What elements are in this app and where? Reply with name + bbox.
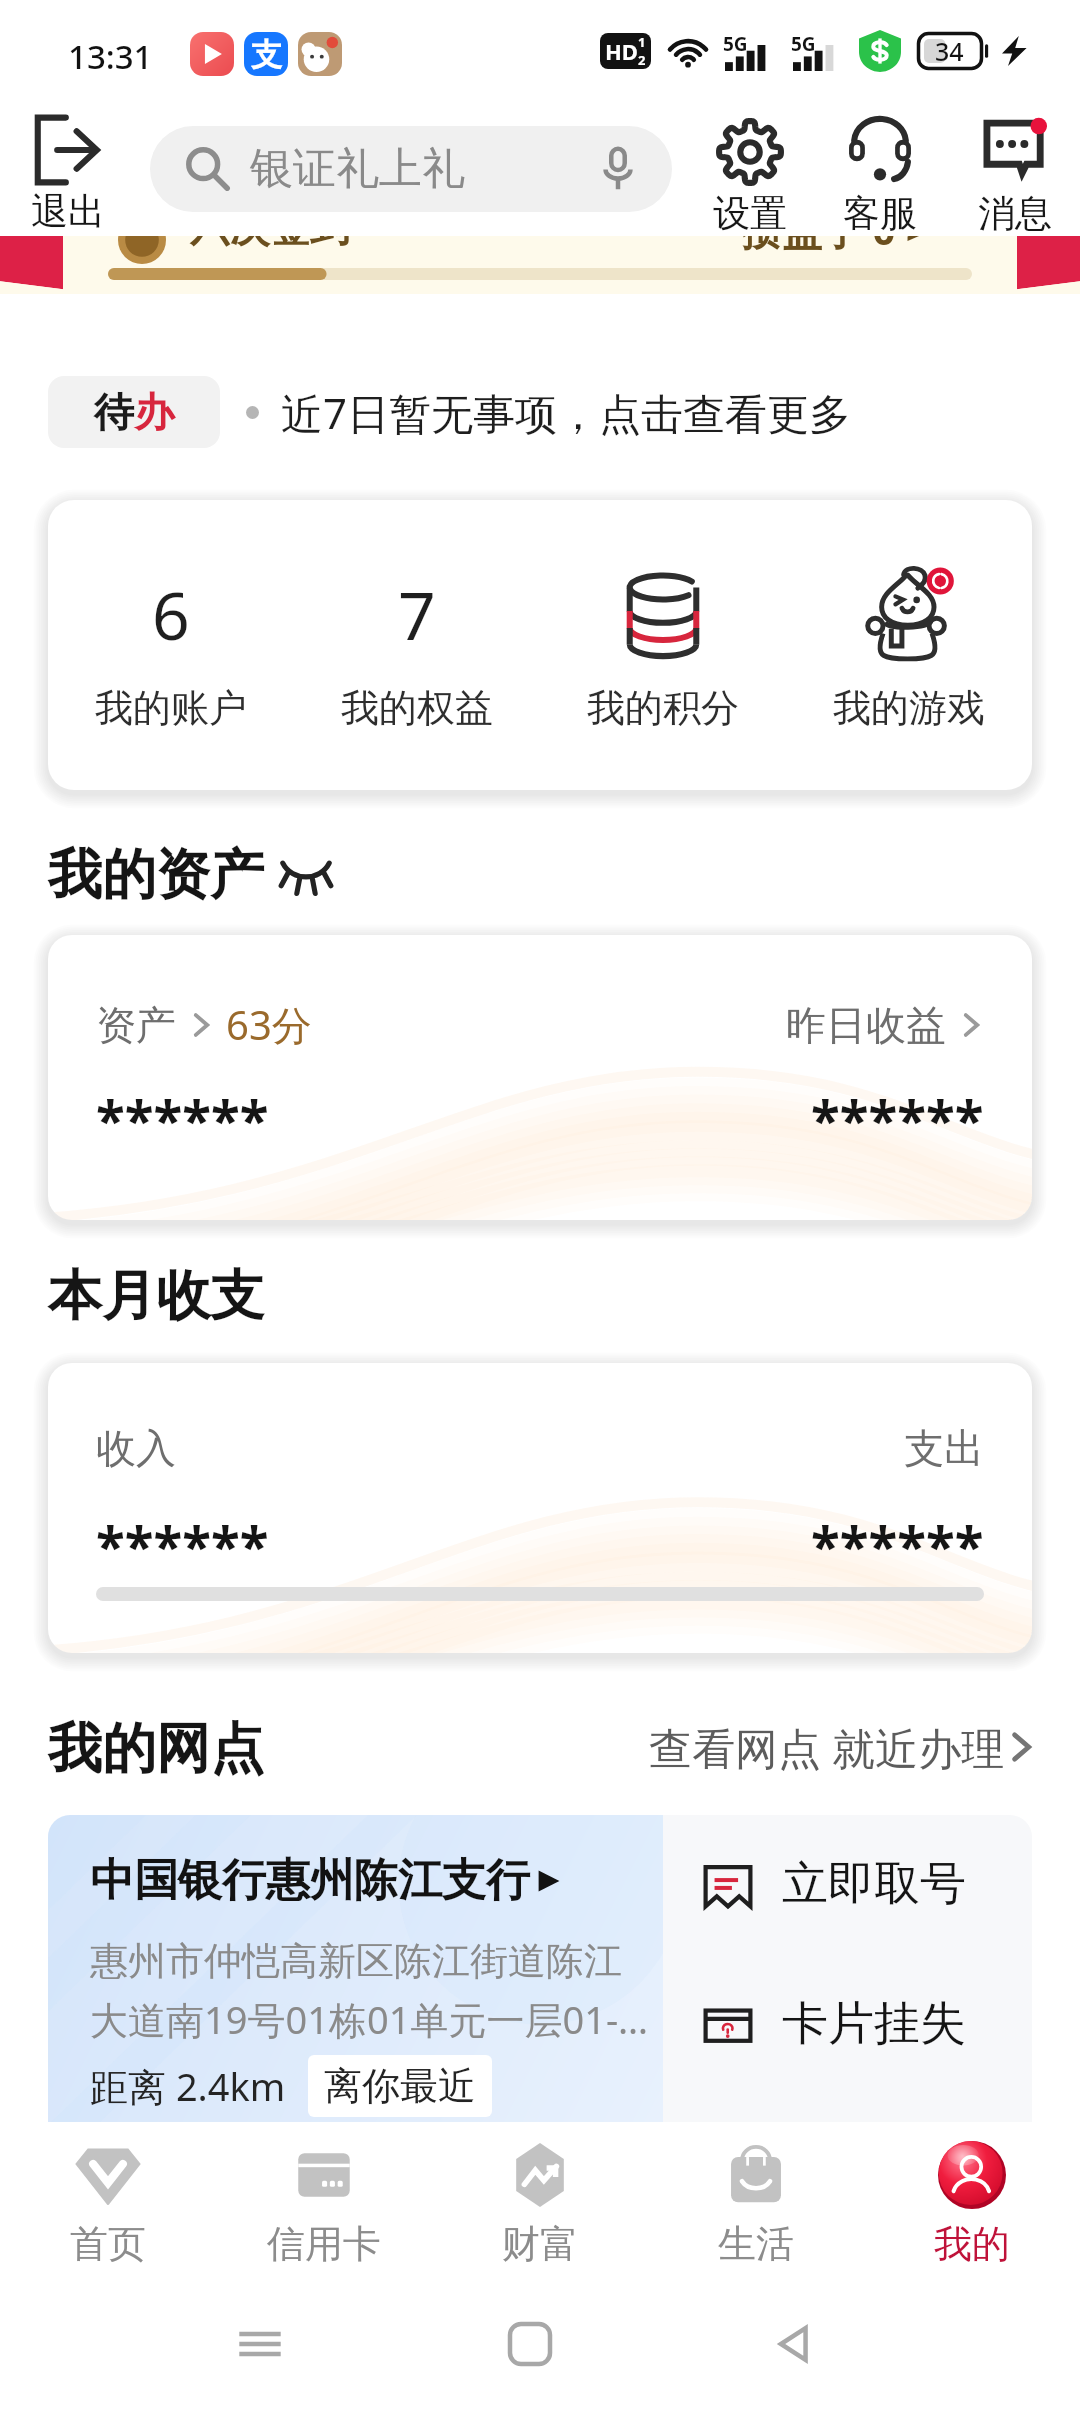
staticText: 大道南19号01栋01单元一层01-…	[90, 1993, 649, 2045]
button[interactable]: 我的游戏	[786, 550, 1032, 740]
button[interactable]: 信用卡	[216, 2122, 432, 2268]
staticText: 银证礼上礼	[250, 142, 465, 196]
staticText: 34	[935, 34, 964, 68]
button[interactable]: 7	[294, 550, 540, 740]
staticText: 生活	[718, 2220, 794, 2268]
staticText: 5G	[791, 31, 816, 57]
staticText: 6	[152, 569, 190, 659]
staticText: 中国银行惠州陈江支行	[90, 1853, 530, 1908]
button[interactable]: 查看网点 就近办理	[649, 1714, 1037, 1780]
button[interactable]: 消息	[953, 114, 1077, 239]
staticText: ******	[96, 1509, 269, 1581]
staticText: ******	[96, 1083, 269, 1155]
staticText: 距离 2.4km	[90, 2060, 286, 2112]
staticText: 待	[94, 387, 134, 437]
staticText: 我的网点	[48, 1715, 264, 1783]
button[interactable]: Home	[488, 2302, 572, 2386]
staticText: 财富	[502, 2220, 578, 2268]
staticText: 我的账户	[95, 684, 247, 732]
staticText: 立即取号	[782, 1855, 966, 1913]
button[interactable]: 立即取号	[700, 1846, 1010, 1922]
staticText: 本月收支	[48, 1262, 264, 1330]
button[interactable]: 设置	[688, 114, 812, 239]
button[interactable]: 卡片挂失	[700, 1986, 1010, 2062]
staticText: 支出	[904, 1423, 984, 1473]
staticText: 63分	[226, 997, 312, 1052]
staticText: 惠州市仲恺高新区陈江街道陈江	[90, 1937, 622, 1985]
staticText: 13:31	[68, 34, 153, 79]
staticText: 2	[638, 51, 646, 69]
button[interactable]: 客服	[818, 114, 942, 239]
button[interactable]: 六次签到	[0, 236, 1080, 294]
staticText: 近7日暂无事项，点击查看更多	[281, 384, 852, 441]
button[interactable]: 6	[48, 550, 294, 740]
staticText: ******	[811, 1509, 984, 1581]
staticText: 消息	[978, 190, 1052, 237]
button[interactable]: Recent apps	[218, 2302, 302, 2386]
button[interactable]: 我的	[864, 2122, 1080, 2268]
staticText: 我的游戏	[833, 684, 985, 732]
staticText: 设置	[713, 190, 787, 237]
button[interactable]: 我的积分	[540, 550, 786, 740]
staticText: ******	[811, 1083, 984, 1155]
staticText: 5G	[723, 31, 748, 57]
button[interactable]: Back	[753, 2302, 837, 2386]
staticText: 7	[398, 569, 436, 659]
staticText: 1	[638, 33, 646, 51]
button[interactable]: 生活	[648, 2122, 864, 2268]
button[interactable]: 显示或隐藏金额	[274, 843, 338, 907]
button[interactable]: 首页	[0, 2122, 216, 2268]
staticText: 收入	[96, 1423, 176, 1473]
staticText: 我的积分	[587, 684, 739, 732]
staticText: 六次签到	[190, 236, 350, 252]
staticText: 我的资产	[48, 841, 264, 909]
button[interactable]: 待	[48, 376, 852, 448]
staticText: 首页	[70, 2220, 146, 2268]
staticText: 我的权益	[341, 684, 493, 732]
staticText: 查看网点 就近办理	[649, 1718, 1005, 1777]
staticText: 退出	[31, 188, 105, 235]
staticText: 信用卡	[267, 2220, 381, 2268]
button[interactable]: 收入	[48, 1363, 1032, 1653]
button[interactable]: 退出	[6, 114, 130, 235]
button[interactable]: 银证礼上礼	[150, 126, 672, 212]
staticText: 支	[251, 35, 282, 74]
staticText: 卡片挂失	[782, 1995, 966, 2053]
button[interactable]: 中国银行惠州陈江支行	[48, 1815, 663, 2125]
staticText: 客服	[843, 190, 917, 237]
staticText: 我的	[934, 2220, 1010, 2268]
staticText: HD	[605, 36, 638, 66]
staticText: 离你最近	[324, 2062, 476, 2110]
button[interactable]: 财富	[432, 2122, 648, 2268]
staticText: 资产	[96, 1000, 176, 1050]
button[interactable]: 资产	[48, 935, 1032, 1220]
staticText: 昨日收益	[786, 1000, 946, 1050]
staticText: 攒盖子 0 >	[742, 236, 929, 257]
staticText: 办	[134, 387, 174, 437]
